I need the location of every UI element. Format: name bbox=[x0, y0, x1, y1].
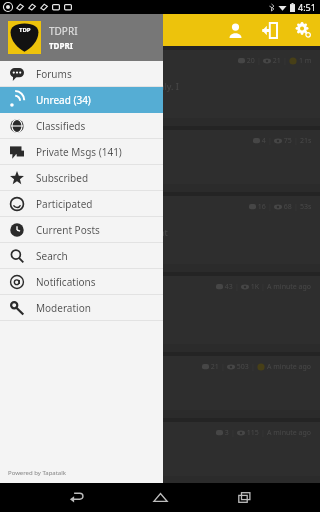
staticText: 1 m bbox=[299, 56, 312, 66]
staticText: 20 bbox=[245, 56, 257, 66]
staticText: Powered by Tapatalk bbox=[8, 469, 66, 477]
button[interactable]: 4 bbox=[0, 130, 320, 192]
button[interactable]: Notifications bbox=[0, 269, 163, 295]
staticText: TDPRI bbox=[49, 40, 73, 51]
staticText: 4 bbox=[260, 136, 268, 146]
staticText: 503 bbox=[235, 362, 251, 372]
staticText: A minute ago bbox=[267, 428, 312, 438]
button[interactable]: Settings bbox=[286, 14, 320, 46]
button[interactable]: Private Msgs (141) bbox=[0, 139, 163, 165]
staticText: TDP bbox=[19, 26, 31, 34]
staticText: Current Posts bbox=[36, 223, 100, 237]
staticText: 16 bbox=[256, 202, 268, 212]
staticText: Notifications bbox=[36, 275, 96, 289]
button[interactable]: Back bbox=[54, 483, 98, 512]
staticText: Moderation bbox=[36, 301, 91, 315]
staticText: 3 bbox=[223, 428, 231, 438]
button[interactable]: Search bbox=[0, 243, 163, 269]
button[interactable]: Profile bbox=[218, 14, 252, 46]
staticText: 68 bbox=[282, 202, 294, 212]
staticText: fan the backs of my fingers across the bbox=[2, 320, 163, 332]
staticText: 75 bbox=[282, 136, 294, 146]
button[interactable]: Subscribed bbox=[0, 165, 163, 191]
staticText: Unread (34) bbox=[38, 21, 218, 39]
staticText: e staff did at the Arena di Verona in It… bbox=[2, 80, 179, 92]
button[interactable]: Current Posts bbox=[0, 217, 163, 243]
button[interactable]: Open navigation drawer bbox=[0, 14, 38, 46]
staticText: A minute ago bbox=[267, 362, 312, 372]
staticText: decisive, thread me someone bbox=[2, 240, 126, 252]
staticText: 21 bbox=[271, 56, 283, 66]
staticText: 43 bbox=[223, 282, 235, 292]
button[interactable]: Forums bbox=[0, 61, 163, 87]
button[interactable]: Unread (34) bbox=[0, 87, 163, 113]
button[interactable]: 20 bbox=[0, 50, 320, 126]
staticText: now a lot of guys do use them, but I bbox=[2, 306, 154, 318]
staticText: A minute ago bbox=[267, 282, 312, 292]
button[interactable]: 21 bbox=[0, 356, 320, 418]
staticText: TDP bbox=[14, 23, 26, 31]
staticText: Search bbox=[36, 249, 68, 263]
button[interactable]: Recent apps bbox=[222, 483, 266, 512]
button[interactable]: Classifieds bbox=[0, 113, 163, 139]
staticText: eally glad you enjoy my music :) bbox=[2, 160, 136, 172]
button[interactable]: Participated bbox=[0, 191, 163, 217]
staticText: esponsible and i don't know where that bbox=[2, 226, 168, 238]
staticText: Participated bbox=[36, 197, 93, 211]
button[interactable]: Moderation bbox=[0, 295, 163, 321]
staticText: 1K bbox=[249, 282, 261, 292]
staticText: 4:51 bbox=[298, 1, 316, 13]
button[interactable]: TDP bbox=[0, 14, 163, 61]
staticText: Forums bbox=[36, 67, 72, 81]
button[interactable]: 16 bbox=[0, 196, 320, 272]
staticText: 21s bbox=[300, 136, 312, 146]
button[interactable]: 3 bbox=[0, 422, 320, 483]
staticText: Unread (34) bbox=[36, 93, 91, 107]
button[interactable]: Home bbox=[138, 483, 182, 512]
staticText: TDPRI bbox=[49, 24, 78, 38]
button[interactable]: 43 bbox=[0, 276, 320, 352]
button[interactable]: Log out bbox=[252, 14, 286, 46]
staticText: y in, they confiscated any bottled and bbox=[2, 94, 160, 106]
staticText: 53s bbox=[300, 202, 312, 212]
staticText: Classifieds bbox=[36, 119, 86, 133]
staticText: 21 bbox=[209, 362, 221, 372]
staticText: Subscribed bbox=[36, 171, 89, 185]
staticText: 115 bbox=[245, 428, 261, 438]
staticText: Private Msgs (141) bbox=[36, 145, 122, 159]
